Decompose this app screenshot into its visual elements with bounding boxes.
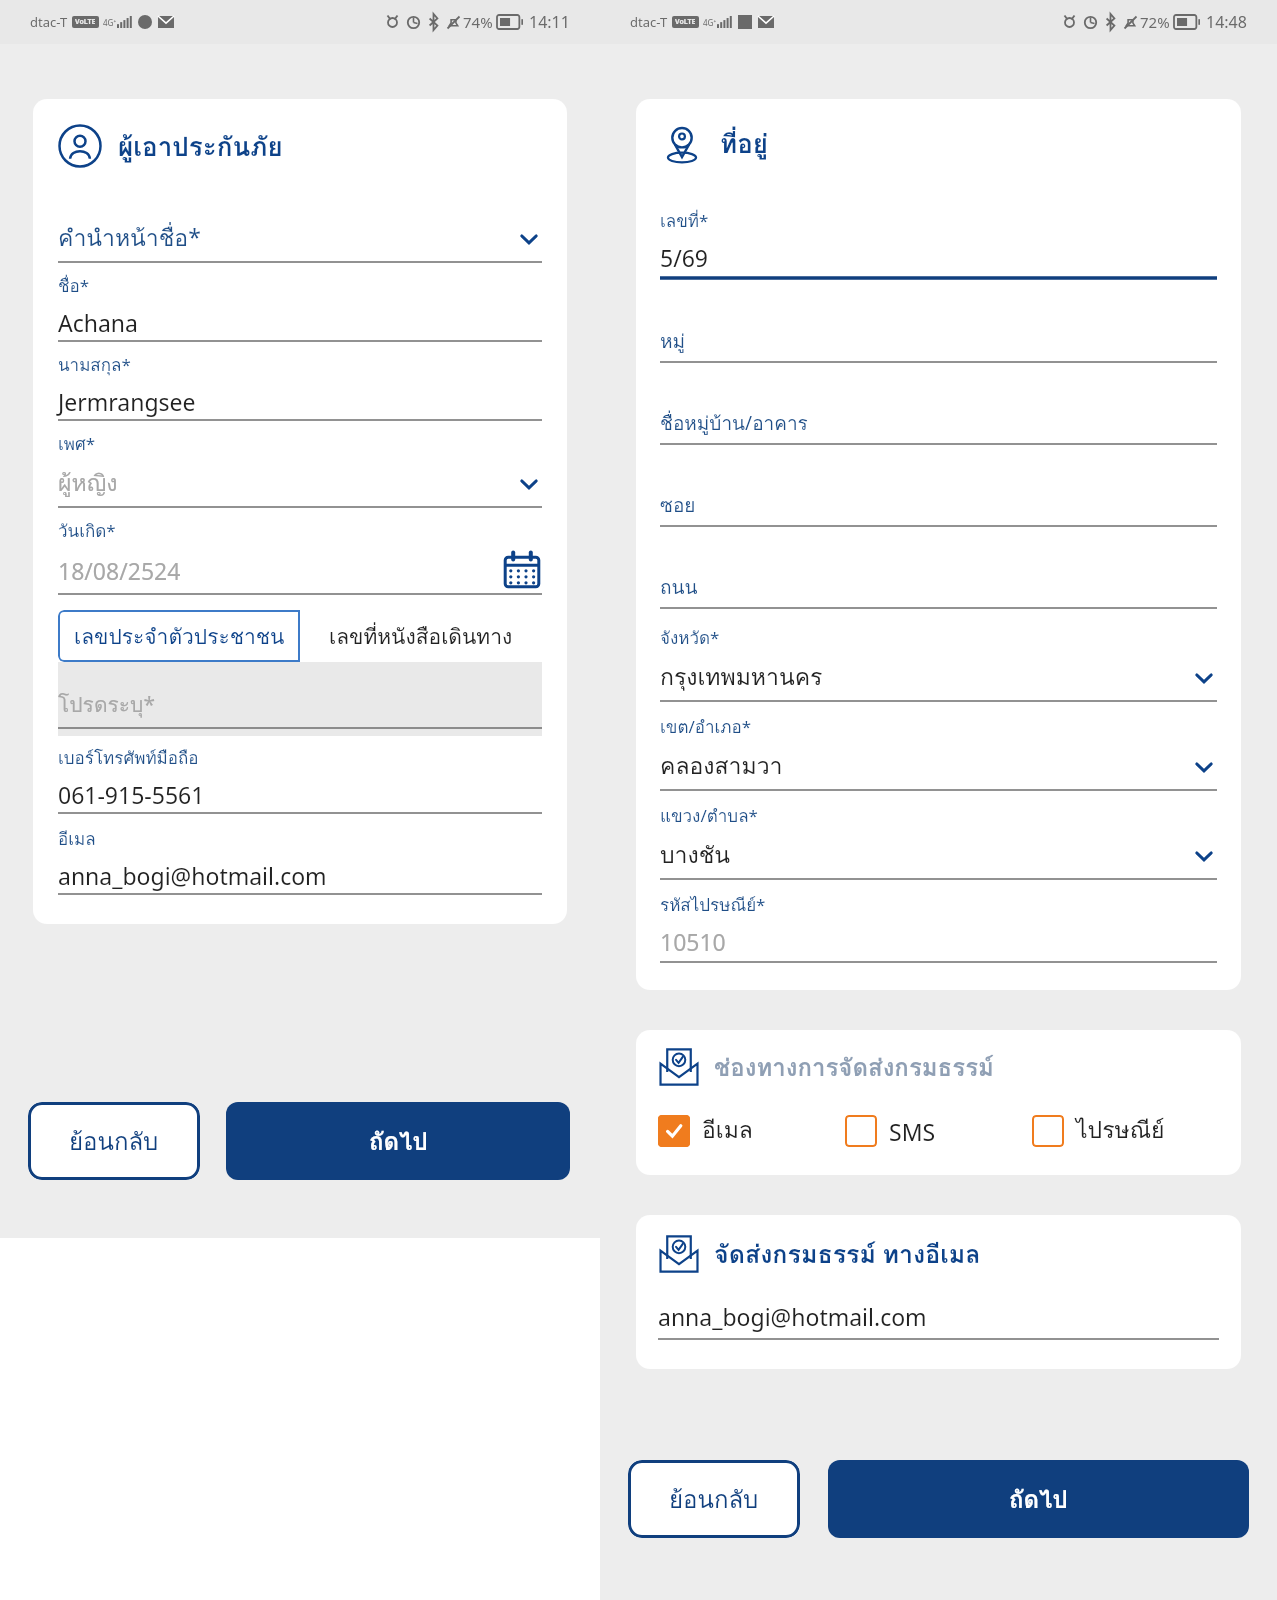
- staticText: หมู่: [660, 326, 686, 356]
- staticText: 4G⁺: [103, 17, 117, 28]
- staticText: จัดส่งกรมธรรม์ ทางอีเมล: [714, 1234, 981, 1274]
- button[interactable]: ชื่อหมู่บ้าน/อาคาร: [660, 408, 1217, 446]
- staticText: ไปรษณีย์: [1076, 1112, 1165, 1149]
- staticText: ถนน: [660, 572, 698, 602]
- staticText: เขต/อำเภอ*: [660, 713, 752, 740]
- button[interactable]: แขวง/ตำบล*: [660, 802, 1217, 881]
- staticText: โปรดระบุ*: [58, 688, 155, 721]
- button[interactable]: คำนำหน้าชื่อ*: [58, 220, 542, 257]
- staticText: อีเมล: [58, 825, 96, 852]
- staticText: ซอย: [660, 490, 696, 520]
- staticText: เลขที่*: [660, 207, 709, 234]
- staticText: นามสกุล*: [58, 351, 131, 378]
- staticText: บางชัน: [660, 837, 1191, 874]
- button[interactable]: เลขที่*: [660, 207, 1217, 280]
- staticText: รหัสไปรษณีย์*: [660, 891, 766, 918]
- staticText: เลขประจำตัวประชาชน: [74, 620, 285, 653]
- staticText: ถัดไป: [369, 1122, 428, 1160]
- button[interactable]: เขต/อำเภอ*: [660, 713, 1217, 792]
- button[interactable]: รหัสไปรษณีย์*: [660, 891, 1217, 964]
- button[interactable]: SMS: [845, 1115, 1032, 1147]
- button[interactable]: อีเมล: [658, 1112, 845, 1149]
- staticText: VoLTE: [75, 17, 96, 27]
- staticText: เพศ*: [58, 430, 96, 457]
- staticText: จังหวัด*: [660, 624, 720, 651]
- staticText: 4G⁺: [703, 17, 717, 28]
- other: Delivery: [658, 1046, 700, 1088]
- staticText: ที่อยู่: [720, 123, 768, 164]
- staticText: ย้อนกลับ: [669, 1480, 759, 1518]
- staticText: 72%: [1140, 12, 1170, 32]
- staticText: VoLTE: [675, 17, 696, 27]
- other: Pick date: [502, 550, 542, 590]
- other: Address: [660, 121, 704, 165]
- button[interactable]: ถัดไป: [226, 1102, 570, 1180]
- button[interactable]: เบอร์โทรศัพท์มือถือ: [58, 736, 542, 815]
- staticText: เบอร์โทรศัพท์มือถือ: [58, 744, 199, 771]
- staticText: 18/08/2524: [58, 555, 502, 586]
- other: Delivery: [658, 1233, 700, 1275]
- button[interactable]: ซอย: [660, 490, 1217, 528]
- staticText: ถัดไป: [1009, 1480, 1068, 1518]
- button[interactable]: นามสกุล*: [58, 343, 542, 422]
- staticText: 14:48: [1206, 11, 1247, 33]
- staticText: ผู้เอาประกันภัย: [118, 126, 283, 167]
- button[interactable]: เลขประจำตัวประชาชน: [58, 610, 300, 662]
- staticText: ชื่อ*: [58, 272, 90, 299]
- button[interactable]: เลขที่หนังสือเดินทาง: [300, 610, 542, 662]
- other: Insured person: [58, 124, 102, 168]
- staticText: คลองสามวา: [660, 748, 1191, 785]
- button[interactable]: ถนน: [660, 572, 1217, 610]
- button[interactable]: หมู่: [660, 326, 1217, 364]
- button[interactable]: โปรดระบุ*: [58, 662, 542, 736]
- button[interactable]: 18/08/2524: [58, 550, 542, 590]
- staticText: อีเมล: [702, 1112, 753, 1149]
- staticText: SMS: [889, 1116, 936, 1147]
- staticText: 061-915-5561: [58, 779, 205, 810]
- staticText: เลขที่หนังสือเดินทาง: [329, 620, 513, 653]
- staticText: 10510: [660, 926, 726, 957]
- staticText: กรุงเทพมหานคร: [660, 659, 1191, 696]
- staticText: ชื่อหมู่บ้าน/อาคาร: [660, 408, 808, 438]
- staticText: แขวง/ตำบล*: [660, 802, 758, 829]
- button[interactable]: ไปรษณีย์: [1032, 1112, 1219, 1149]
- button[interactable]: อีเมล: [58, 815, 542, 896]
- staticText: Achana: [58, 307, 138, 338]
- staticText: Jermrangsee: [58, 386, 196, 417]
- button[interactable]: ผู้หญิง: [58, 465, 542, 502]
- staticText: dtac-T: [30, 13, 68, 31]
- staticText: 14:11: [529, 11, 570, 33]
- button[interactable]: ย้อนกลับ: [628, 1460, 800, 1538]
- staticText: anna_bogi@hotmail.com: [658, 1301, 927, 1332]
- staticText: ผู้หญิง: [58, 465, 516, 502]
- staticText: ช่องทางการจัดส่งกรมธรรม์: [714, 1048, 994, 1086]
- staticText: 5/69: [660, 242, 709, 273]
- staticText: dtac-T: [630, 13, 668, 31]
- staticText: anna_bogi@hotmail.com: [58, 860, 327, 891]
- button[interactable]: จังหวัด*: [660, 624, 1217, 703]
- button[interactable]: ถัดไป: [828, 1460, 1249, 1538]
- button[interactable]: anna_bogi@hotmail.com: [658, 1301, 1219, 1341]
- staticText: คำนำหน้าชื่อ*: [58, 220, 516, 257]
- button[interactable]: ชื่อ*: [58, 264, 542, 343]
- staticText: 74%: [463, 12, 493, 32]
- staticText: ย้อนกลับ: [69, 1122, 159, 1160]
- button[interactable]: ย้อนกลับ: [28, 1102, 200, 1180]
- staticText: วันเกิด*: [58, 517, 116, 544]
